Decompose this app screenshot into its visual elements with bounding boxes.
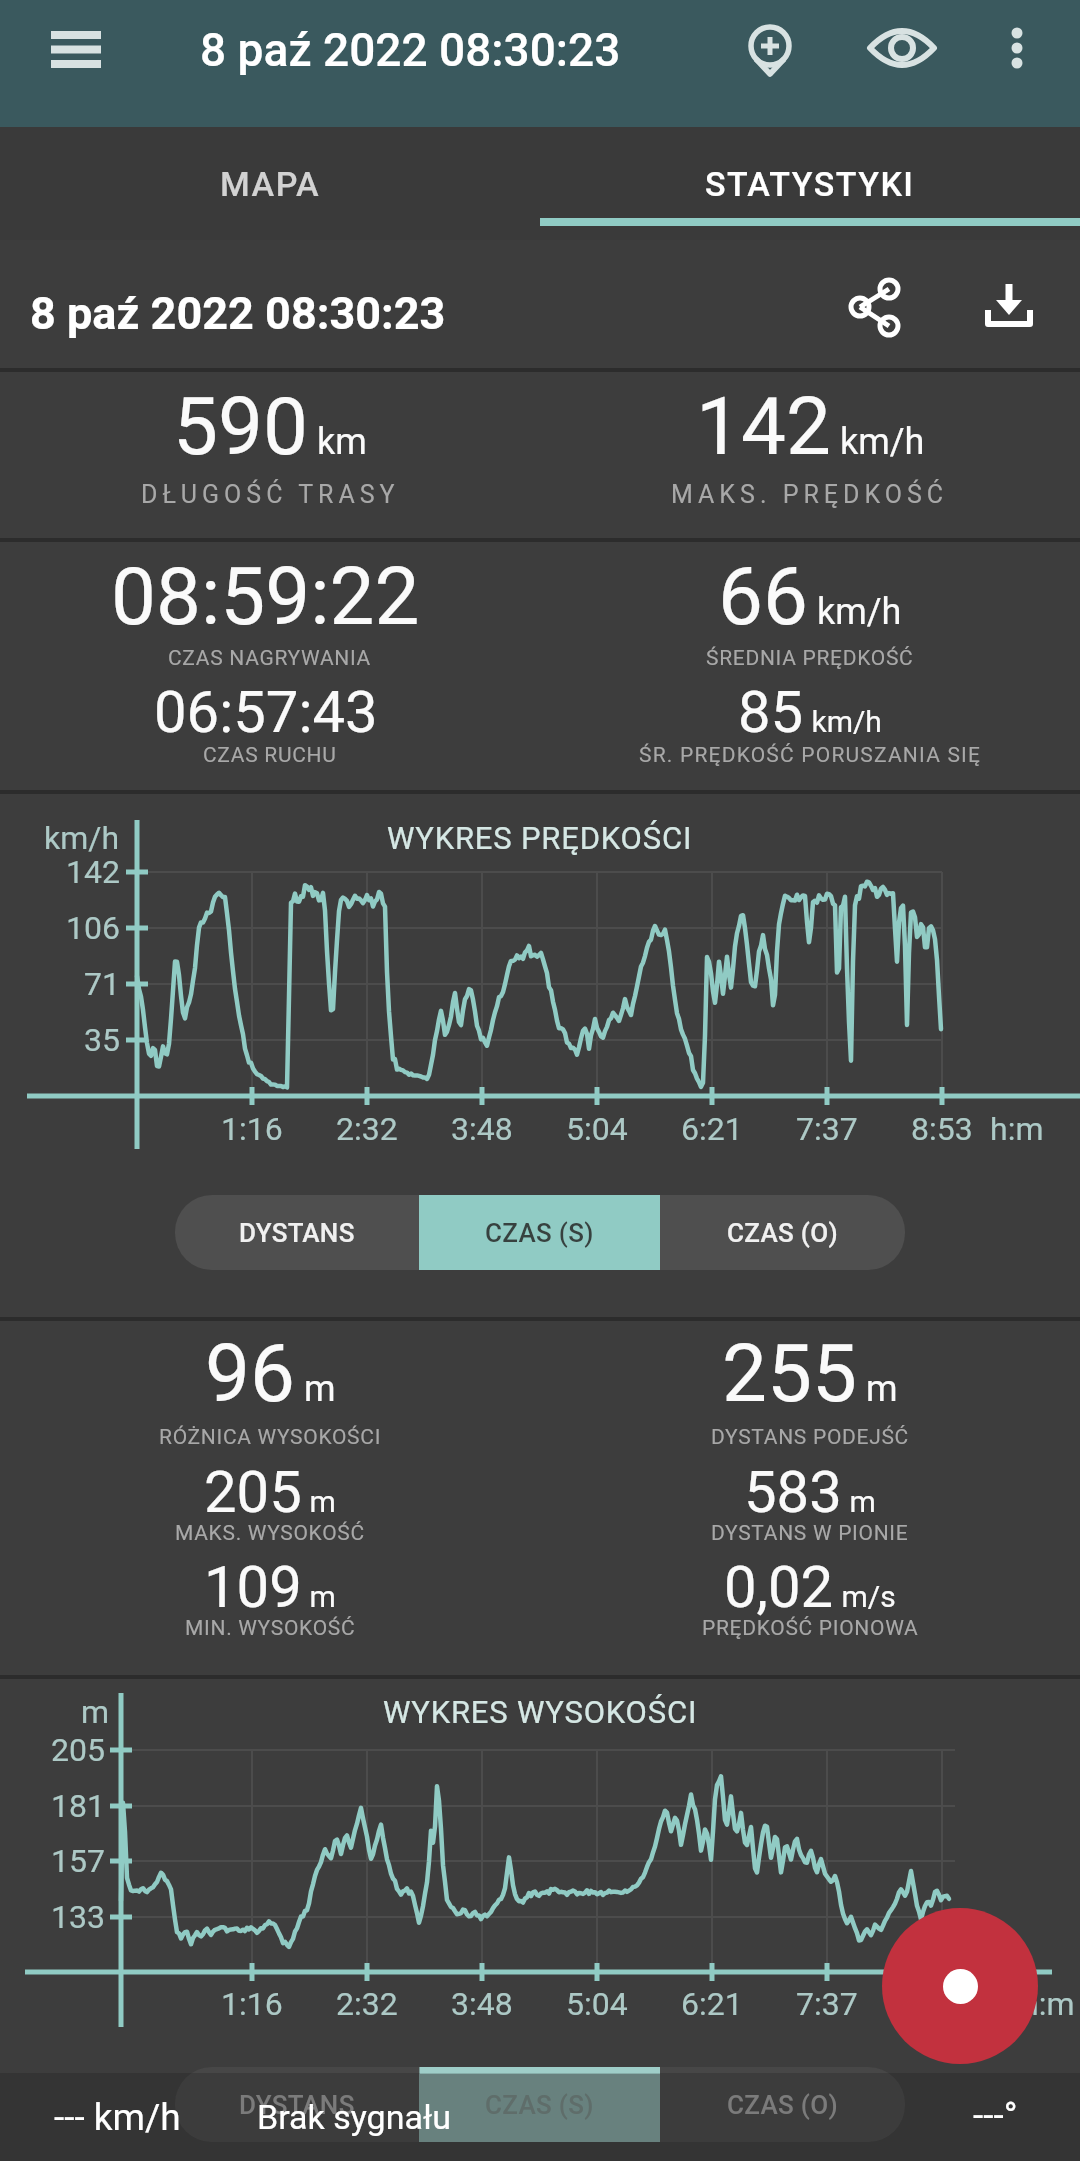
button[interactable]: [985, 6, 1049, 90]
staticText: MIN. WYSOKOŚĆ: [185, 1616, 356, 1641]
staticText: 3:48: [451, 1110, 513, 1148]
staticText: 5:04: [566, 1110, 628, 1148]
staticText: RÓŻNICA WYSOKOŚCI: [159, 1425, 382, 1450]
staticText: ŚREDNIA PRĘDKOŚĆ: [706, 646, 914, 671]
staticText: MAKS. PRĘDKOŚĆ: [671, 480, 949, 509]
staticText: 6:21: [681, 1110, 743, 1148]
staticText: 8 paź 2022 08:30:23: [30, 287, 446, 340]
staticText: 8 paź 2022 08:30:23: [200, 23, 621, 77]
staticText: h:m: [1021, 1985, 1075, 2023]
staticText: m: [302, 1579, 336, 1614]
button[interactable]: DYSTANS: [175, 1195, 419, 1270]
staticText: 2:32: [336, 1985, 398, 2023]
staticText: WYKRES PRĘDKOŚCI: [387, 820, 693, 856]
staticText: 1:16: [221, 1985, 283, 2023]
staticText: 5:04: [566, 1985, 628, 2023]
staticText: 66: [718, 550, 808, 644]
staticText: ŚR. PRĘDKOŚĆ PORUSZANIA SIĘ: [639, 743, 982, 768]
staticText: CZAS RUCHU: [203, 743, 337, 768]
staticText: 142: [66, 853, 120, 891]
staticText: m: [302, 1484, 336, 1519]
staticText: km/h: [44, 819, 120, 857]
button[interactable]: CZAS (S): [419, 1195, 660, 1270]
staticText: km/h: [808, 591, 902, 633]
staticText: 7:37: [796, 1110, 858, 1148]
staticText: 2:32: [336, 1110, 398, 1148]
staticText: km/h: [804, 704, 882, 739]
staticText: 583: [744, 1458, 842, 1526]
staticText: m: [81, 1693, 110, 1731]
staticText: 06:57:43: [154, 678, 378, 746]
staticText: 109: [204, 1553, 302, 1621]
staticText: DŁUGOŚĆ TRASY: [141, 480, 400, 509]
staticText: DYSTANS: [239, 2090, 355, 2120]
staticText: km: [308, 421, 367, 463]
staticText: 71: [84, 965, 120, 1003]
staticText: m: [295, 1368, 336, 1410]
staticText: m: [842, 1484, 876, 1519]
staticText: CZAS (S): [485, 1218, 594, 1248]
staticText: PRĘDKOŚĆ PIONOWA: [702, 1616, 919, 1641]
button[interactable]: [967, 270, 1051, 354]
button[interactable]: [728, 6, 812, 90]
staticText: 157: [51, 1842, 105, 1880]
button[interactable]: [860, 6, 944, 90]
staticText: DYSTANS W PIONIE: [711, 1521, 909, 1546]
staticText: h:m: [990, 1110, 1044, 1148]
staticText: 590: [173, 380, 308, 474]
button[interactable]: STATYSTYKI: [540, 127, 1080, 240]
staticText: 205: [204, 1458, 302, 1526]
staticText: CZAS (O): [727, 1218, 838, 1248]
staticText: DYSTANS PODEJŚĆ: [711, 1425, 909, 1450]
staticText: 0,02: [724, 1553, 834, 1621]
button[interactable]: [832, 270, 916, 354]
button[interactable]: CZAS (O): [660, 2067, 905, 2142]
staticText: 181: [51, 1787, 105, 1825]
staticText: MAKS. WYSOKOŚĆ: [175, 1521, 365, 1546]
staticText: 08:59:22: [111, 550, 420, 644]
staticText: m/s: [834, 1579, 896, 1614]
staticText: 6:21: [681, 1985, 743, 2023]
staticText: 8:53: [911, 1985, 973, 2023]
staticText: MAPA: [220, 164, 321, 204]
staticText: 142: [696, 380, 831, 474]
staticText: km/h: [831, 421, 925, 463]
staticText: STATYSTYKI: [705, 164, 915, 204]
button[interactable]: [36, 18, 116, 80]
staticText: Brak sygnału: [257, 2097, 451, 2137]
button[interactable]: [882, 1908, 1038, 2064]
staticText: DYSTANS: [239, 1218, 355, 1248]
staticText: m: [857, 1368, 898, 1410]
button[interactable]: CZAS (O): [660, 1195, 905, 1270]
button[interactable]: CZAS (S): [419, 2067, 660, 2142]
button[interactable]: DYSTANS: [175, 2067, 419, 2142]
staticText: 1:16: [221, 1110, 283, 1148]
staticText: 133: [51, 1898, 105, 1936]
staticText: 106: [66, 909, 120, 947]
staticText: CZAS (S): [485, 2090, 594, 2120]
staticText: CZAS (O): [727, 2090, 838, 2120]
staticText: 96: [205, 1327, 295, 1421]
staticText: 35: [84, 1021, 120, 1059]
staticText: 7:37: [796, 1985, 858, 2023]
staticText: ---°: [973, 2094, 1018, 2137]
button[interactable]: MAPA: [0, 127, 540, 240]
staticText: 8:53: [911, 1110, 973, 1148]
staticText: --- km/h: [54, 2096, 181, 2139]
staticText: 85: [738, 678, 804, 746]
staticText: WYKRES WYSOKOŚCI: [383, 1694, 698, 1730]
staticText: 255: [722, 1327, 857, 1421]
staticText: CZAS NAGRYWANIA: [168, 646, 372, 671]
staticText: 3:48: [451, 1985, 513, 2023]
staticText: 205: [51, 1731, 105, 1769]
